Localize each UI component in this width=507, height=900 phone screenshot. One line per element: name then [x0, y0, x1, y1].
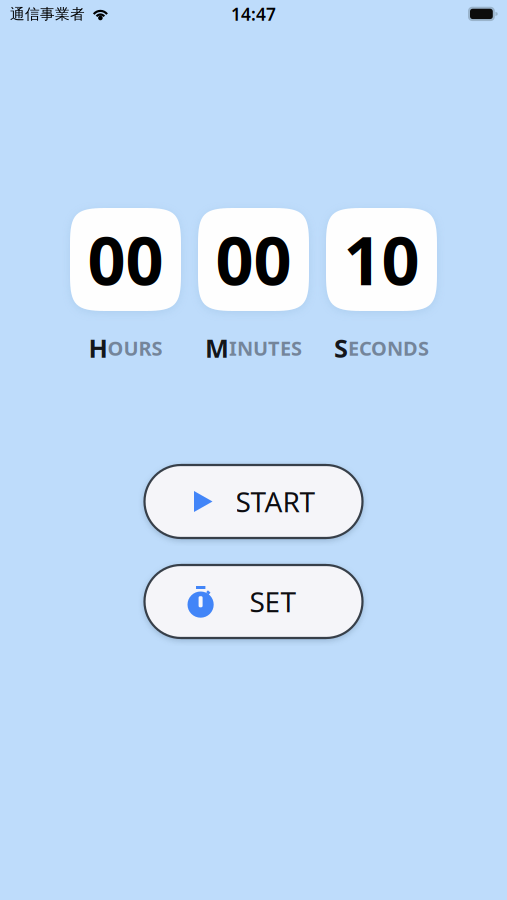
staticText: INUTES: [229, 335, 302, 361]
staticText: OURS: [107, 335, 162, 361]
staticText: START: [235, 483, 315, 520]
staticText: S: [334, 331, 348, 365]
staticText: ECONDS: [348, 335, 429, 361]
staticText: H: [88, 331, 107, 365]
staticText: 14:47: [231, 2, 276, 25]
staticText: M: [205, 331, 229, 365]
staticText: 00: [215, 215, 291, 304]
staticText: SET: [249, 583, 296, 620]
button[interactable]: START: [144, 465, 362, 538]
staticText: 00: [87, 215, 163, 304]
staticText: 通信事業者: [10, 5, 85, 23]
button[interactable]: SET: [144, 565, 362, 638]
staticText: 10: [343, 215, 419, 304]
